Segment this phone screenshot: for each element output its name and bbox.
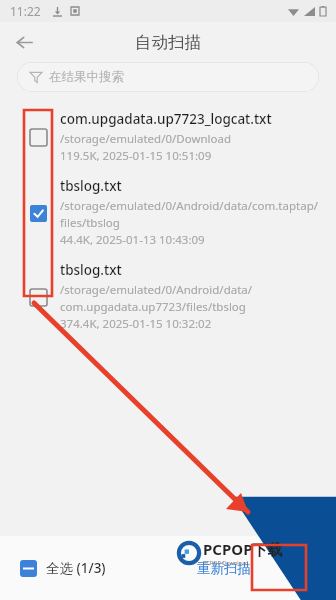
staticText: 11:22 — [10, 3, 41, 19]
staticText: com.upgadata.up7723/files/tbslog — [60, 299, 246, 315]
button[interactable]: 在结果中搜索 — [17, 62, 319, 92]
button[interactable]: Selected — [30, 205, 47, 222]
button[interactable]: 全选 (1/3) — [20, 559, 106, 577]
button[interactable]: Selected — [0, 171, 336, 255]
button[interactable]: Not selected — [0, 104, 336, 171]
button[interactable]: Not selected — [30, 129, 47, 146]
staticText: 全选 (1/3) — [46, 559, 106, 577]
button[interactable]: Not selected — [30, 289, 47, 306]
staticText: 在结果中搜索 — [49, 69, 124, 85]
staticText: /storage/emulated/0/Download — [60, 131, 232, 147]
staticText: 自动扫描 — [135, 32, 201, 53]
staticText: PCPOP下载 — [203, 539, 283, 559]
button[interactable]: Back — [8, 26, 40, 58]
staticText: /storage/emulated/0/Android/data/com.tap… — [60, 198, 318, 214]
staticText: 44.4K, 2025-01-13 10:43:09 — [60, 232, 205, 248]
staticText: com.upgadata.up7723_logcat.txt — [60, 110, 272, 128]
button[interactable]: 重新扫描 — [187, 554, 261, 583]
staticText: 重新扫描 — [197, 560, 251, 577]
staticText: 374.4K, 2025-01-15 10:32:02 — [60, 316, 212, 332]
staticText: tbslog.txt — [60, 177, 122, 195]
staticText: PCPOP Download — [203, 559, 249, 566]
staticText: 119.5K, 2025-01-15 10:51:09 — [60, 148, 212, 164]
button[interactable]: 导入 — [275, 554, 322, 583]
staticText: files/tbslog — [60, 215, 120, 231]
staticText: /storage/emulated/0/Android/data/ — [60, 282, 253, 298]
staticText: tbslog.txt — [60, 261, 122, 279]
button[interactable]: Not selected — [0, 255, 336, 339]
staticText: 导入 — [285, 560, 312, 577]
